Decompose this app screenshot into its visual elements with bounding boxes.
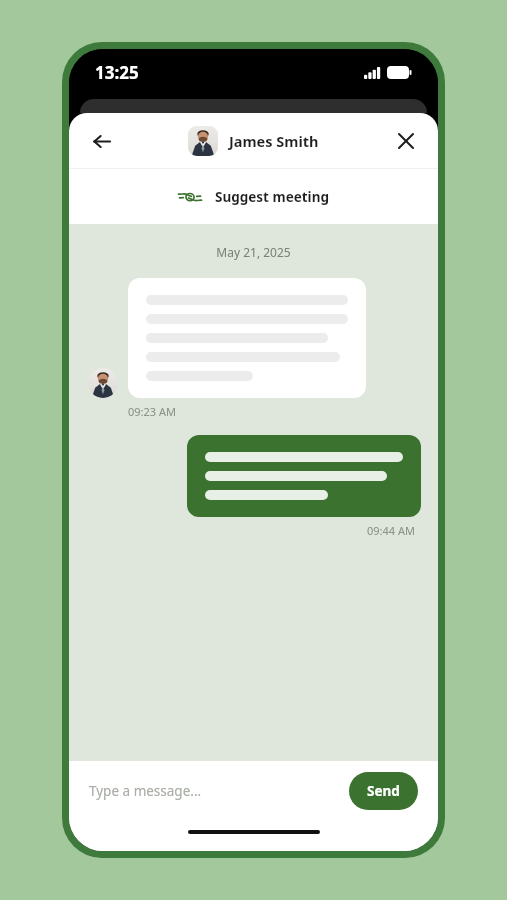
staticText: Type a message...: [89, 782, 202, 800]
button[interactable]: Suggest meeting: [69, 169, 438, 224]
staticText: Suggest meeting: [215, 188, 329, 206]
button[interactable]: Type a message...: [89, 782, 349, 800]
button[interactable]: Back: [83, 123, 119, 159]
staticText: 09:23 AM: [128, 404, 176, 419]
staticText: Send: [367, 782, 400, 800]
button[interactable]: Send: [349, 772, 418, 810]
button[interactable]: James Smith: [188, 126, 319, 156]
button[interactable]: Close: [388, 123, 424, 159]
staticText: May 21, 2025: [69, 244, 438, 260]
staticText: 09:44 AM: [69, 523, 415, 538]
staticText: 13:25: [95, 61, 139, 84]
button[interactable]: [187, 435, 421, 517]
staticText: James Smith: [229, 131, 319, 151]
button[interactable]: [128, 278, 366, 398]
